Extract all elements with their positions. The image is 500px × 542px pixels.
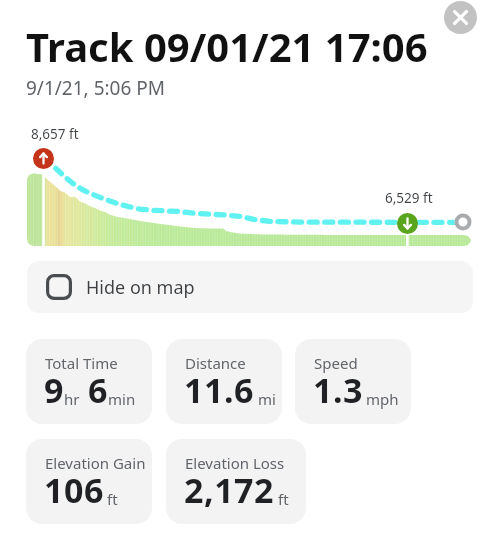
staticText: ft [278, 489, 289, 509]
staticText: 11.6 [184, 367, 254, 413]
button[interactable]: Total Time [26, 339, 152, 424]
staticText: 6 [88, 367, 108, 413]
staticText: Speed [314, 353, 358, 373]
button[interactable]: Close [444, 1, 477, 34]
button[interactable]: Elevation Loss [166, 439, 306, 524]
other: Start point [33, 148, 54, 169]
button[interactable]: Hide on map [27, 261, 473, 313]
staticText: 9/1/21, 5:06 PM [26, 75, 166, 101]
button[interactable]: Elevation Gain [26, 439, 152, 524]
staticText: mph [366, 389, 399, 409]
staticText: ft [107, 489, 118, 509]
staticText: Hide on map [86, 275, 195, 300]
staticText: 1.3 [313, 367, 363, 413]
staticText: 6,529 ft [385, 189, 433, 207]
staticText: Elevation Loss [185, 453, 285, 473]
staticText: hr [64, 389, 80, 409]
button[interactable]: Speed [295, 339, 411, 424]
other: End point [397, 213, 418, 234]
staticText: 8,657 ft [31, 125, 79, 143]
staticText: 9 [44, 367, 64, 413]
staticText: mi [258, 389, 276, 409]
staticText: Distance [185, 353, 246, 373]
staticText: Track 09/01/21 17:06 [26, 19, 428, 73]
staticText: Elevation Gain [45, 453, 146, 473]
staticText: 106 [44, 467, 104, 513]
button[interactable]: Distance [166, 339, 282, 424]
staticText: 2,172 [184, 467, 275, 513]
staticText: min [108, 389, 136, 409]
staticText: Total Time [45, 353, 118, 373]
